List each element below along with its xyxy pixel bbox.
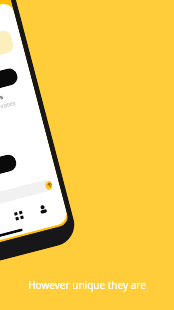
button[interactable]: Send <box>0 178 54 218</box>
button[interactable]: Daily checklist <box>0 29 15 77</box>
staticText: However unique they are <box>28 278 146 292</box>
staticText: +12 votes <box>0 99 16 113</box>
button[interactable]: Apps <box>8 205 30 227</box>
staticText: Today you have 120 points <box>0 93 4 121</box>
button[interactable]: Profile <box>32 198 54 220</box>
other: Send <box>44 180 53 191</box>
